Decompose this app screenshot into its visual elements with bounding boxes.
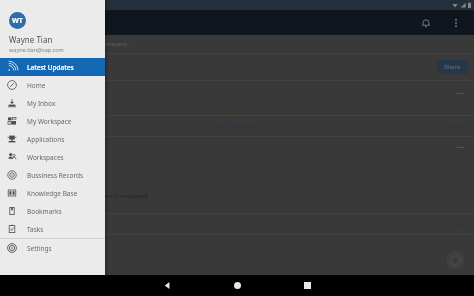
button[interactable]: Home — [0, 76, 105, 94]
staticText: Home — [27, 81, 46, 90]
staticText: My Workspace — [27, 117, 72, 126]
staticText: Settings — [27, 244, 52, 253]
button[interactable]: Recent apps — [293, 275, 321, 296]
staticText: Knowledge Base — [27, 189, 78, 198]
button[interactable]: Home — [223, 275, 251, 296]
staticText: Company... — [100, 40, 132, 48]
button[interactable]: Back — [153, 275, 181, 296]
staticText: Workspaces — [27, 153, 64, 162]
button[interactable]: Share — [437, 60, 468, 74]
button[interactable]: WT — [0, 0, 105, 58]
button[interactable]: Applications — [0, 130, 105, 148]
staticText: Share — [444, 63, 461, 71]
staticText: …en (Completed) — [100, 192, 148, 200]
staticText: Bussiness Records — [27, 171, 84, 180]
button[interactable]: Share — [439, 122, 466, 130]
button[interactable]: Post menu — [454, 141, 466, 153]
button[interactable]: Tasks — [0, 220, 105, 238]
staticText: Applications — [27, 135, 65, 144]
staticText: Tasks — [27, 225, 44, 234]
button[interactable]: Bookmarks — [0, 202, 105, 220]
button[interactable]: Workspaces — [0, 148, 105, 166]
button[interactable]: My Workspace — [0, 112, 105, 130]
staticText: Latest Updates — [27, 63, 74, 72]
staticText: Bookmarks — [27, 207, 62, 216]
button[interactable]: More options — [446, 13, 466, 33]
button[interactable]: Bussiness Records — [0, 166, 105, 184]
staticText: WT — [12, 16, 23, 26]
staticText: wayne.tian@sap.com — [9, 46, 64, 53]
staticText: Wayne Tian — [9, 34, 53, 45]
button[interactable]: My Inbox — [0, 94, 105, 112]
staticText: Share — [449, 220, 466, 228]
staticText: …ent — [100, 146, 115, 154]
button[interactable]: Post menu — [454, 87, 466, 99]
staticText: Share — [449, 122, 466, 130]
button[interactable]: Refresh — [446, 251, 464, 269]
button[interactable]: Knowledge Base — [0, 184, 105, 202]
staticText: Comment — [228, 122, 256, 130]
button[interactable]: Share — [439, 220, 466, 228]
button[interactable]: Settings — [0, 239, 105, 257]
button[interactable]: Notifications — [416, 13, 436, 33]
button[interactable]: Comment — [218, 122, 256, 130]
staticText: My Inbox — [27, 99, 56, 108]
button[interactable]: Latest Updates — [0, 58, 105, 76]
